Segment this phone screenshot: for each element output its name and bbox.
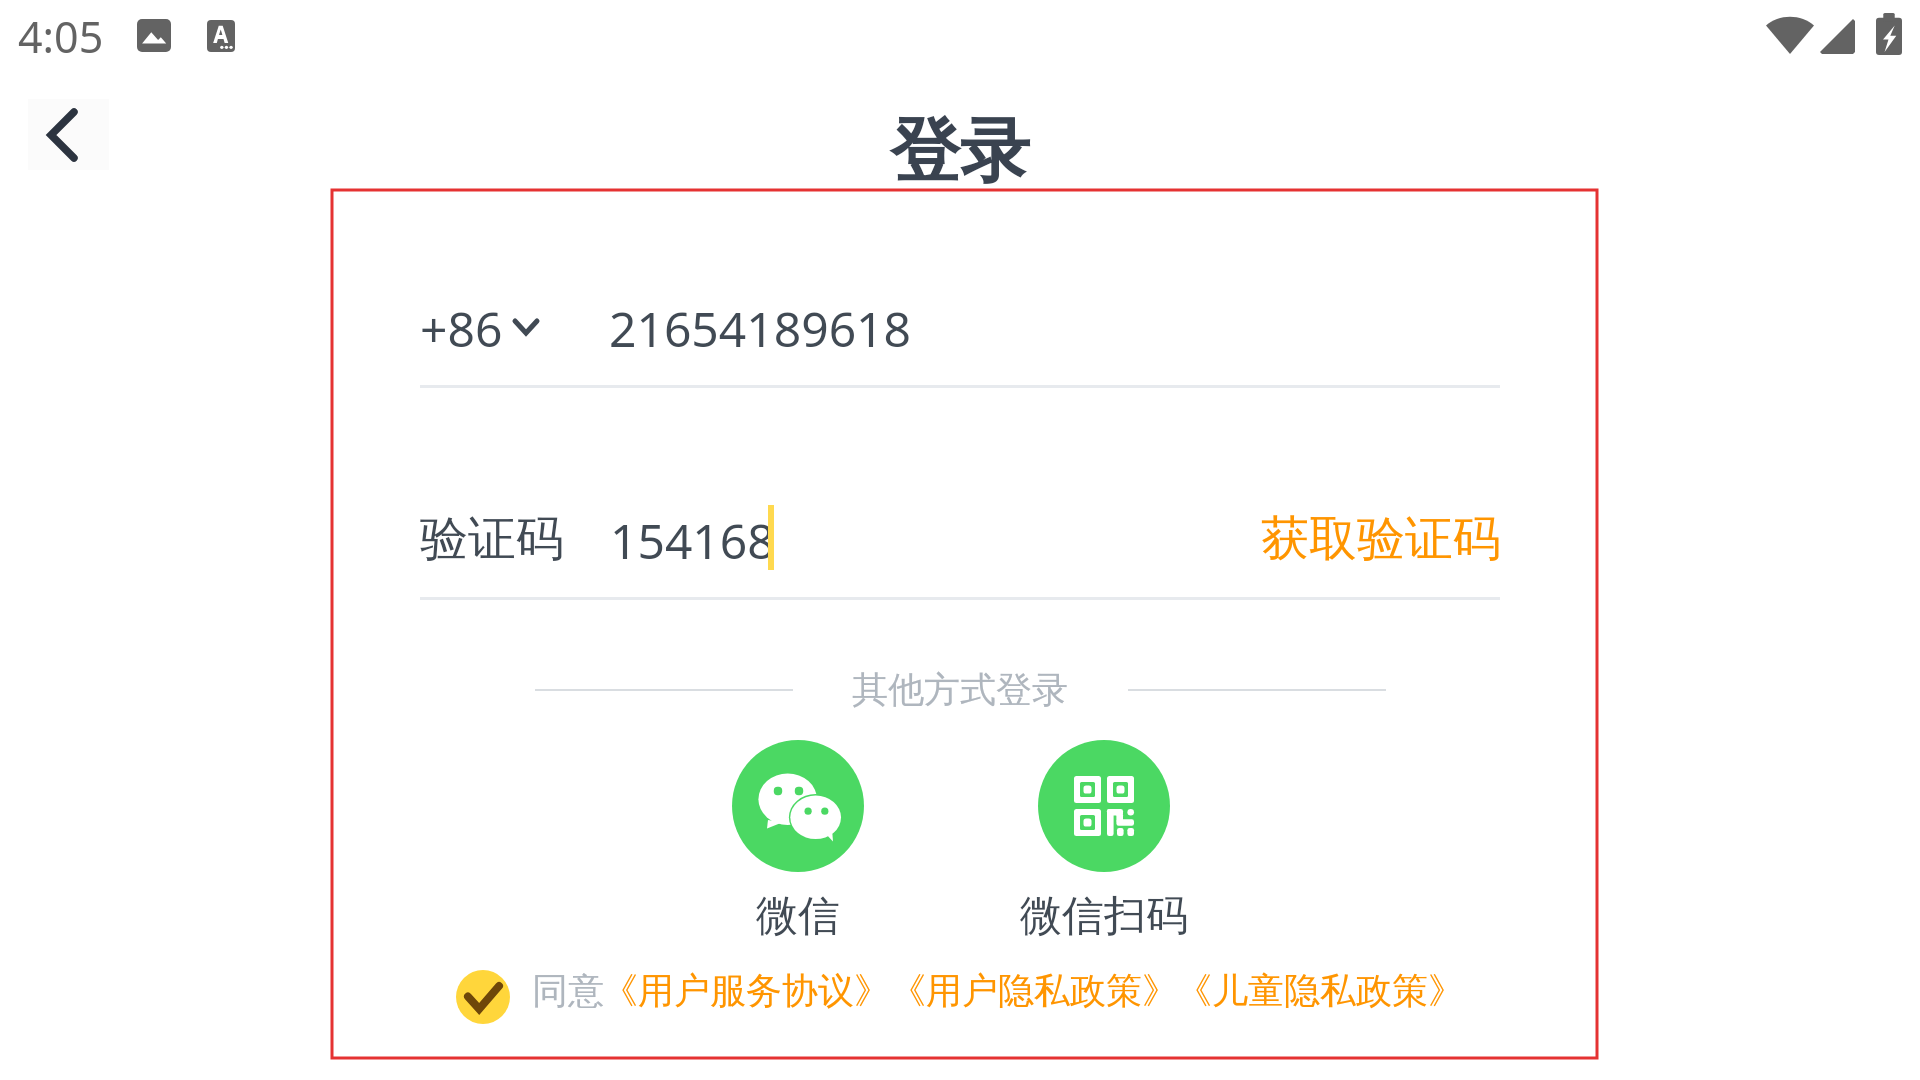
staticText: 登录 (890, 108, 1030, 196)
button[interactable]: 微信 (672, 740, 924, 943)
staticText: 154168 (610, 508, 775, 570)
button[interactable]: Agree checkbox (456, 970, 510, 1024)
staticText: 21654189618 (609, 296, 912, 358)
staticText: 获取验证码 (1261, 509, 1501, 569)
staticText: 《用户服务协议》 (602, 968, 890, 1013)
button[interactable]: 微信扫码 (978, 740, 1230, 943)
button[interactable]: Back (28, 99, 109, 170)
button[interactable]: 《儿童隐私政策》 (1176, 968, 1464, 1013)
button[interactable]: +86 (420, 296, 537, 358)
staticText: 4:05 (18, 7, 104, 66)
staticText: 微信 (756, 890, 840, 943)
staticText: +86 (420, 296, 503, 358)
staticText: 微信扫码 (1020, 890, 1188, 943)
staticText: 《儿童隐私政策》 (1176, 968, 1464, 1013)
staticText: 其他方式登录 (852, 667, 1068, 712)
button[interactable]: 《用户隐私政策》 (890, 968, 1178, 1013)
staticText: 验证码 (420, 509, 564, 569)
button[interactable]: 获取验证码 (1261, 508, 1501, 570)
button[interactable]: 《用户服务协议》 (602, 968, 890, 1013)
staticText: 《用户隐私政策》 (890, 968, 1178, 1013)
staticText: 同意 (532, 968, 604, 1013)
